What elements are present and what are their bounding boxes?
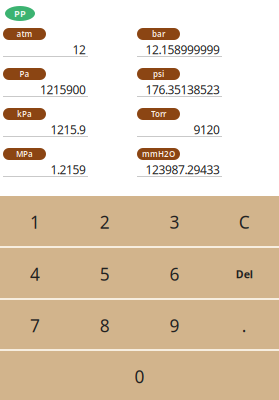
button[interactable]: Torr [137, 108, 271, 148]
button[interactable]: Pa [3, 68, 137, 108]
button[interactable]: atm [3, 28, 137, 68]
staticText: . [242, 314, 247, 337]
button[interactable]: PP [5, 6, 35, 21]
button[interactable]: kPa [3, 108, 137, 148]
staticText: kPa [17, 109, 32, 119]
staticText: PP [14, 7, 26, 20]
staticText: psi [153, 69, 164, 79]
button[interactable]: . [209, 300, 279, 349]
button[interactable]: 3 [139, 196, 209, 246]
button[interactable]: 9 [139, 300, 209, 349]
staticText: 9 [169, 314, 179, 337]
button[interactable]: bar [137, 28, 271, 68]
button[interactable]: mmH2O [137, 148, 271, 188]
staticText: 1 [30, 210, 40, 233]
button[interactable]: 0 [0, 351, 279, 400]
button[interactable]: 1 [0, 196, 70, 246]
staticText: 176.35138523 [145, 81, 220, 97]
staticText: 7 [30, 314, 40, 337]
staticText: 1215.9 [50, 121, 86, 137]
staticText: Pa [19, 69, 29, 79]
button[interactable]: MPa [3, 148, 137, 188]
button[interactable]: 6 [139, 248, 209, 298]
button[interactable]: 2 [70, 196, 140, 246]
staticText: 6 [169, 262, 179, 285]
staticText: 0 [134, 365, 144, 388]
staticText: 12.158999999 [145, 41, 220, 57]
staticText: Torr [151, 109, 166, 119]
button[interactable]: 8 [70, 300, 140, 349]
staticText: 123987.29433 [145, 161, 220, 177]
staticText: bar [152, 29, 165, 39]
staticText: 9120 [193, 121, 220, 137]
staticText: 2 [100, 210, 110, 233]
button[interactable]: 7 [0, 300, 70, 349]
staticText: 4 [30, 262, 40, 285]
button[interactable]: psi [137, 68, 271, 108]
staticText: 1.2159 [50, 161, 86, 177]
staticText: MPa [16, 149, 33, 159]
staticText: 1215900 [40, 81, 86, 97]
staticText: Del [236, 267, 253, 281]
button[interactable]: 4 [0, 248, 70, 298]
staticText: 8 [100, 314, 110, 337]
button[interactable]: C [209, 196, 279, 246]
staticText: C [239, 210, 250, 233]
staticText: 3 [169, 210, 179, 233]
staticText: 5 [100, 262, 110, 285]
button[interactable]: Del [209, 248, 279, 298]
staticText: 12 [72, 41, 86, 57]
staticText: mmH2O [142, 149, 175, 159]
button[interactable]: 5 [70, 248, 140, 298]
staticText: atm [16, 29, 32, 39]
